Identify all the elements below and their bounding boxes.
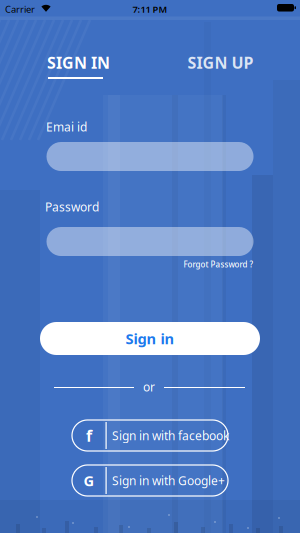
staticText: SIGN IN: [47, 52, 110, 73]
staticText: Sign in: [125, 329, 174, 348]
staticText: Carrier: [5, 3, 35, 15]
button[interactable]: SIGN UP: [187, 52, 253, 73]
staticText: f: [86, 425, 92, 446]
staticText: Sign in with Google+: [112, 472, 225, 488]
staticText: Emai id: [46, 119, 87, 135]
staticText: 7:11 PM: [132, 3, 167, 15]
button[interactable]: Password: [46, 227, 253, 256]
staticText: Password: [45, 199, 99, 215]
staticText: SIGN UP: [187, 52, 253, 73]
button[interactable]: SIGN IN: [47, 52, 110, 73]
staticText: or: [143, 379, 155, 395]
button[interactable]: Emai id: [46, 142, 253, 171]
staticText: Sign in with facebook: [112, 427, 229, 443]
staticText: G: [83, 471, 94, 490]
button[interactable]: Forgot Password ?: [183, 259, 253, 270]
button[interactable]: Sign in: [40, 322, 260, 355]
button[interactable]: f: [72, 420, 228, 451]
button[interactable]: G: [72, 465, 228, 496]
staticText: Forgot Password ?: [183, 259, 253, 270]
